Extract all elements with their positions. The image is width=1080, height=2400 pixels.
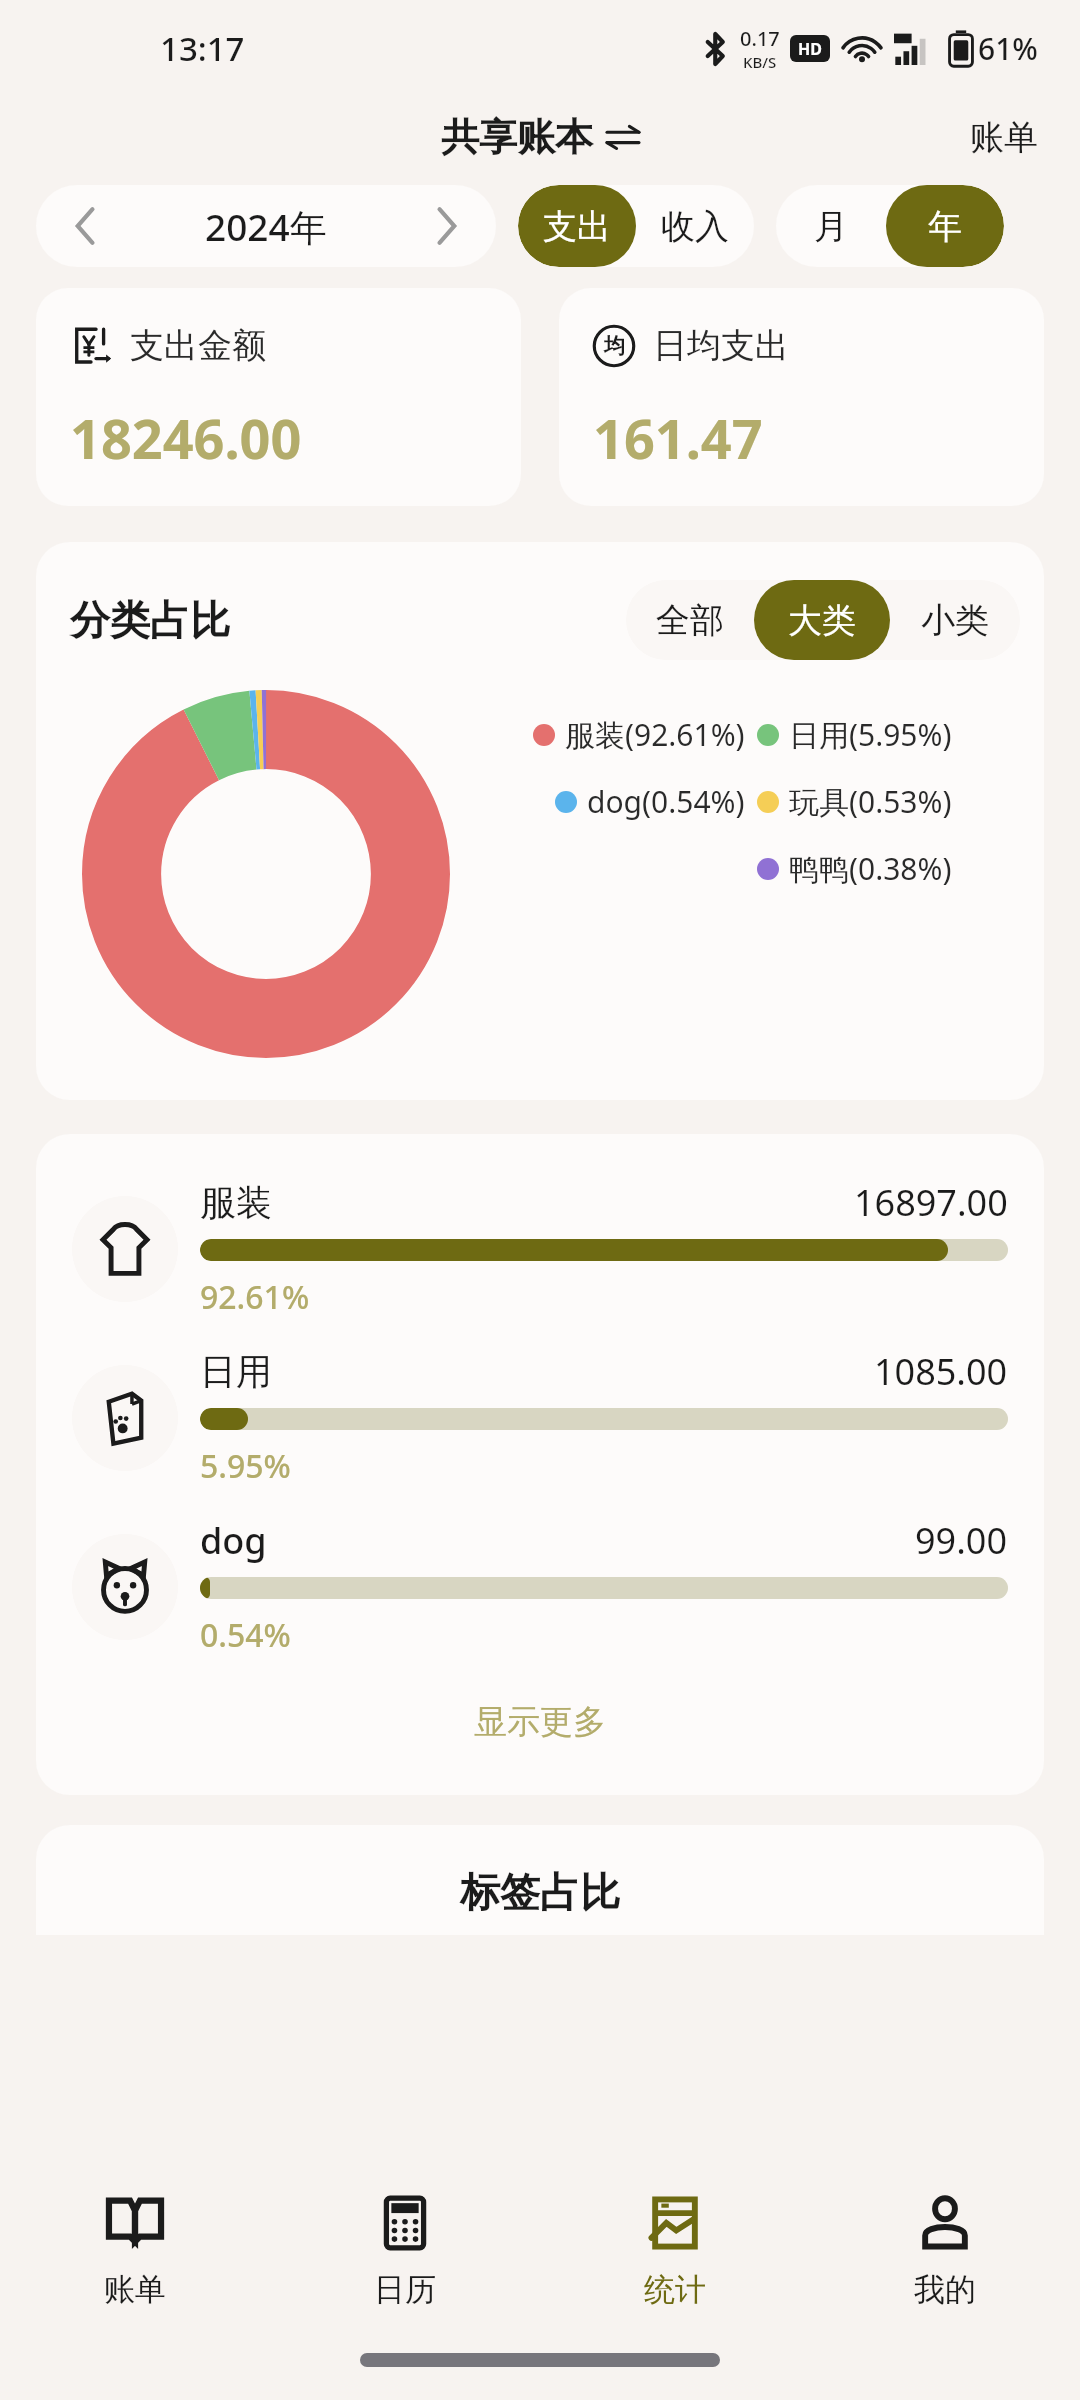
staticText: 2024年 — [205, 201, 327, 252]
staticText: 收入 — [661, 205, 729, 248]
staticText: 支出 — [543, 205, 611, 248]
button[interactable]: 小类 — [890, 580, 1020, 660]
staticText: 服装(92.61%) — [565, 714, 745, 755]
button[interactable]: 月 — [776, 185, 886, 267]
staticText: 统计 — [644, 2270, 706, 2309]
button[interactable]: 年 — [886, 185, 1004, 267]
staticText: 161.47 — [593, 401, 763, 475]
button[interactable]: 鸭鸭(0.38%) — [757, 848, 952, 889]
staticText: 分类占比 — [70, 595, 230, 645]
staticText: HD — [798, 38, 822, 60]
staticText: 日均支出 — [653, 324, 789, 367]
button[interactable]: 日用(5.95%) — [757, 714, 952, 755]
staticText: 玩具(0.53%) — [789, 781, 952, 822]
button[interactable]: 均 — [559, 288, 1044, 506]
staticText: 小类 — [921, 599, 989, 642]
button[interactable]: 服装 — [36, 1168, 1044, 1337]
staticText: 年 — [928, 205, 962, 248]
staticText: 日历 — [374, 2270, 436, 2309]
button[interactable]: 服装(92.61%) — [533, 714, 745, 755]
button[interactable]: 我的 — [810, 2165, 1080, 2335]
staticText: 99.00 — [915, 1516, 1008, 1565]
staticText: dog(0.54%) — [587, 781, 745, 822]
staticText: 支出金额 — [130, 324, 266, 367]
staticText: 我的 — [914, 2270, 976, 2309]
staticText: 鸭鸭(0.38%) — [789, 848, 952, 889]
staticText: 月 — [814, 205, 848, 248]
staticText: 服装 — [200, 1180, 272, 1225]
button[interactable]: 共享账本 — [431, 107, 649, 167]
staticText: KB/S — [743, 52, 777, 72]
button[interactable]: 大类 — [754, 580, 890, 660]
staticText: 1085.00 — [874, 1347, 1008, 1396]
button[interactable]: 支出金额 — [36, 288, 521, 506]
staticText: 账单 — [104, 2270, 166, 2309]
staticText: 92.61% — [200, 1275, 310, 1319]
button[interactable]: 显示更多 — [36, 1675, 1044, 1769]
staticText: 显示更多 — [474, 1701, 606, 1743]
button[interactable]: 账单 — [0, 2165, 270, 2335]
staticText: 61% — [978, 28, 1038, 69]
button[interactable]: dog(0.54%) — [555, 781, 745, 822]
staticText: 16897.00 — [854, 1178, 1008, 1227]
staticText: 共享账本 — [441, 113, 593, 161]
button[interactable]: 统计 — [540, 2165, 810, 2335]
staticText: 5.95% — [200, 1444, 291, 1488]
staticText: 全部 — [656, 599, 724, 642]
staticText: 均 — [604, 333, 625, 359]
button[interactable]: 日历 — [270, 2165, 540, 2335]
button[interactable]: 支出 — [518, 185, 636, 267]
button[interactable]: dog — [36, 1506, 1044, 1675]
staticText: 0.17 — [740, 25, 780, 52]
button[interactable]: 下一年 — [396, 185, 496, 267]
button[interactable]: 玩具(0.53%) — [757, 781, 952, 822]
staticText: 日用 — [200, 1349, 272, 1394]
button[interactable]: 账单 — [928, 106, 1080, 169]
staticText: 大类 — [788, 599, 856, 642]
button[interactable]: 标签占比 — [36, 1825, 1044, 1935]
button[interactable]: 日用 — [36, 1337, 1044, 1506]
staticText: dog — [200, 1516, 267, 1565]
staticText: 标签占比 — [460, 1867, 620, 1917]
staticText: 18246.00 — [70, 401, 302, 475]
button[interactable]: 全部 — [626, 580, 754, 660]
staticText: 账单 — [970, 116, 1038, 159]
button[interactable]: 收入 — [636, 185, 754, 267]
button[interactable]: 上一年 — [36, 185, 136, 267]
staticText: 0.54% — [200, 1613, 291, 1657]
staticText: 13:17 — [160, 26, 245, 71]
staticText: 日用(5.95%) — [789, 714, 952, 755]
